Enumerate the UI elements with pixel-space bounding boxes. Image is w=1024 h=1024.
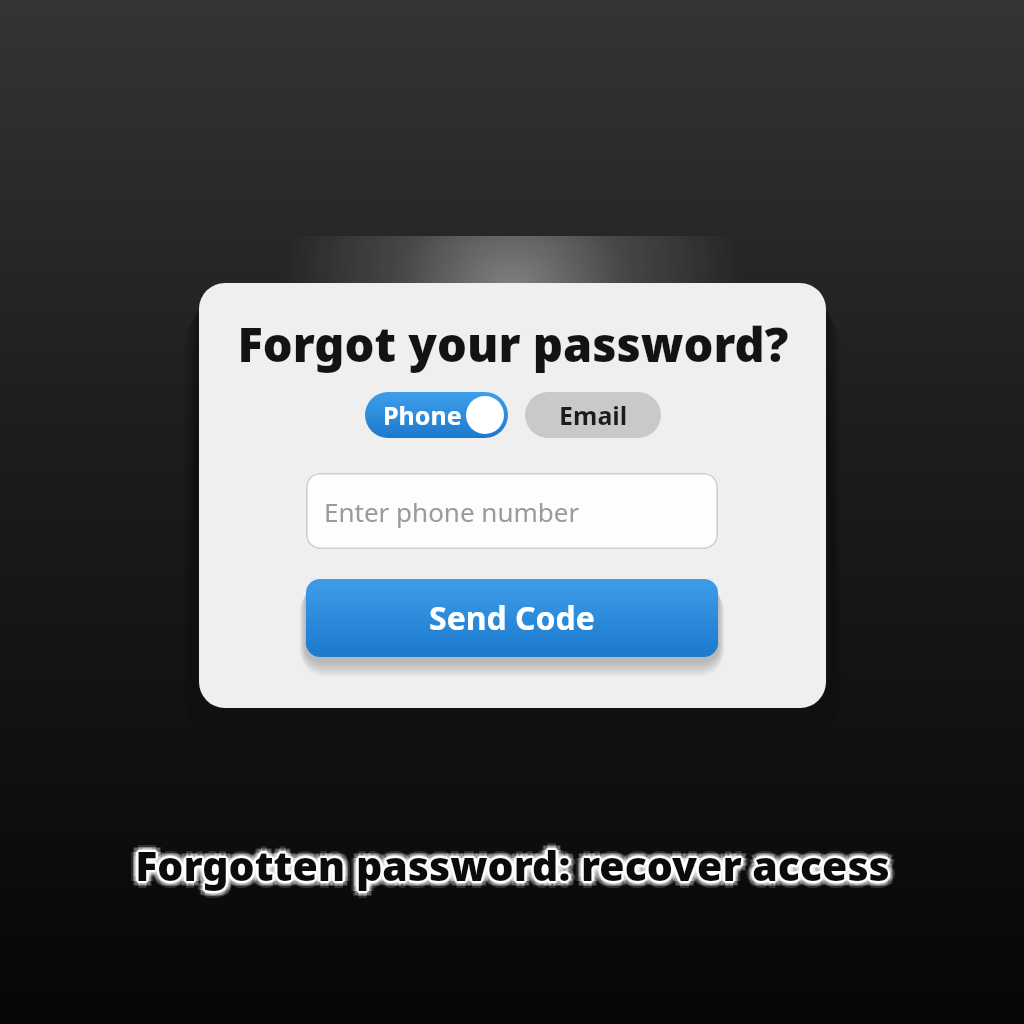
staticText: Email	[559, 398, 628, 432]
staticText: Forgotten password: recover access	[134, 838, 889, 894]
staticText: Forgotten password: recover access	[136, 836, 891, 892]
staticText: Forgotten password: recover access	[137, 835, 892, 891]
staticText: Forgotten password: recover access	[133, 839, 888, 895]
staticText: Forgotten password: recover access	[142, 837, 897, 893]
staticText: Forgotten password: recover access	[133, 837, 888, 893]
staticText: Forgotten password: recover access	[130, 832, 885, 888]
button[interactable]: Send Code	[306, 579, 718, 657]
staticText: Forgotten password: recover access	[134, 836, 889, 892]
staticText: Forgotten password: recover access	[135, 837, 890, 893]
staticText: Forgotten password: recover access	[135, 830, 890, 886]
staticText: Forgot your password?	[237, 312, 789, 376]
staticText: Forgotten password: recover access	[139, 833, 894, 889]
button[interactable]: Enter phone number	[306, 473, 718, 549]
staticText: Forgotten password: recover access	[130, 842, 885, 898]
staticText: Forgotten password: recover access	[133, 835, 888, 891]
staticText: Forgotten password: recover access	[136, 838, 891, 894]
staticText: Send Code	[429, 596, 595, 640]
staticText: Enter phone number	[324, 494, 580, 529]
staticText: Forgotten password: recover access	[131, 841, 886, 897]
staticText: Forgotten password: recover access	[135, 840, 890, 896]
button[interactable]: Phone	[365, 392, 508, 438]
staticText: Forgotten password: recover access	[140, 837, 895, 893]
staticText: Forgotten password: recover access	[135, 835, 890, 891]
staticText: Forgotten password: recover access	[130, 837, 885, 893]
staticText: Forgotten password: recover access	[128, 837, 883, 893]
staticText: Forgotten password: recover access	[135, 844, 890, 900]
staticText: Phone	[383, 398, 462, 432]
staticText: Forgotten password: recover access	[132, 837, 887, 893]
staticText: Forgotten password: recover access	[135, 834, 890, 890]
other: Forgotten password: recover access	[0, 837, 1024, 893]
staticText: Forgotten password: recover access	[135, 842, 890, 898]
staticText: Forgotten password: recover access	[135, 839, 890, 895]
staticText: Forgotten password: recover access	[139, 841, 894, 897]
staticText: Forgotten password: recover access	[140, 842, 895, 898]
staticText: Forgotten password: recover access	[140, 832, 895, 888]
staticText: Forgotten password: recover access	[137, 839, 892, 895]
staticText: Forgotten password: recover access	[131, 833, 886, 889]
staticText: Forgotten password: recover access	[137, 837, 892, 893]
staticText: Forgotten password: recover access	[138, 837, 893, 893]
button[interactable]: Email	[525, 392, 661, 438]
staticText: Forgotten password: recover access	[135, 832, 890, 888]
